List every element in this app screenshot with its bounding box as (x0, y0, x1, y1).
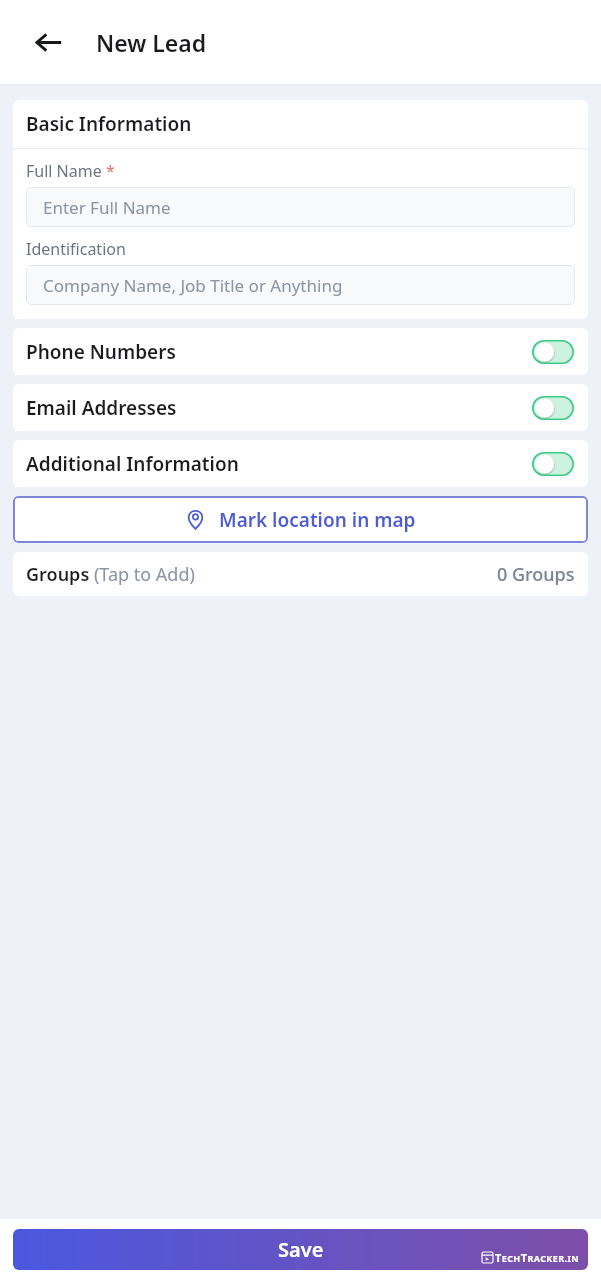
staticText: 0 Groups (497, 562, 575, 587)
staticText: Full Name * (26, 160, 115, 182)
button[interactable]: Additional Information (13, 440, 588, 487)
staticText: Save (278, 1236, 324, 1263)
button[interactable]: Toggle (532, 452, 574, 476)
staticText: Basic Information (26, 111, 192, 137)
staticText: Mark location in map (219, 507, 416, 533)
staticText: TECHTRACKER.IN (495, 1250, 579, 1265)
staticText: Company Name, Job Title or Anything (43, 274, 343, 297)
button[interactable]: Back (22, 16, 74, 68)
button[interactable]: Company Name, Job Title or Anything (26, 265, 575, 305)
button[interactable]: Phone Numbers (13, 328, 588, 375)
staticText: Additional Information (26, 451, 239, 477)
staticText: Identification (26, 238, 126, 260)
staticText: Groups (Tap to Add) (26, 562, 195, 587)
button[interactable]: Email Addresses (13, 384, 588, 431)
staticText: New Lead (96, 27, 207, 58)
staticText: Phone Numbers (26, 339, 176, 365)
button[interactable]: Groups (Tap to Add) (13, 552, 588, 596)
button[interactable]: Enter Full Name (26, 187, 575, 227)
staticText: Email Addresses (26, 395, 177, 421)
staticText: Enter Full Name (43, 196, 171, 219)
button[interactable]: Toggle (532, 340, 574, 364)
button[interactable]: Save (13, 1229, 588, 1270)
button[interactable]: Mark location in map (13, 496, 588, 543)
button[interactable]: Toggle (532, 396, 574, 420)
